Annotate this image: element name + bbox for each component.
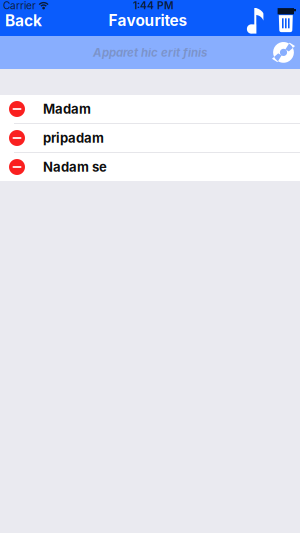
- staticText: Nadam se: [43, 159, 107, 175]
- button[interactable]: Nadam se: [0, 153, 300, 181]
- staticText: Apparet hic erit finis: [93, 46, 207, 59]
- staticText: Madam: [43, 101, 91, 117]
- button[interactable]: Now Playing: [247, 6, 277, 34]
- staticText: Carrier: [3, 0, 36, 12]
- staticText: pripadam: [43, 130, 104, 146]
- staticText: 1:44 PM: [133, 0, 174, 12]
- button[interactable]: pripadam: [0, 124, 300, 152]
- button[interactable]: Back: [0, 11, 50, 29]
- button[interactable]: Delete: [277, 7, 300, 32]
- button[interactable]: Madam: [0, 95, 300, 123]
- staticText: Back: [5, 11, 42, 30]
- staticText: Favourites: [108, 11, 187, 30]
- button[interactable]: Shuffle: [273, 40, 300, 65]
